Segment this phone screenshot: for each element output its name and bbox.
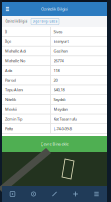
button[interactable]: Çevre Bina ekle	[2, 136, 107, 152]
staticText: Tapu Alanı	[5, 87, 23, 92]
staticText: Saydalı	[53, 97, 65, 102]
staticText: Gazihan	[53, 48, 67, 54]
button[interactable]: Diğer Bilgi Listesi	[31, 18, 59, 25]
button[interactable]: Menu	[2, 2, 13, 16]
button[interactable]: Öznitelik Bilgisi	[4, 18, 29, 25]
staticText: Meydan	[53, 106, 67, 112]
staticText: 118	[53, 68, 59, 73]
button[interactable]: Tool 2	[23, 186, 44, 202]
button[interactable]: Tool 4	[65, 186, 86, 202]
button[interactable]: Tool 3	[44, 186, 65, 202]
staticText: Nitelik	[5, 97, 16, 102]
staticText: Öznitelik Bilgisi	[5, 20, 27, 23]
staticText: Mahalle No	[5, 58, 25, 63]
staticText: Sivas	[53, 29, 62, 34]
button[interactable]: Tool 1	[2, 186, 23, 202]
staticText: Çevre Bina ekle	[40, 141, 68, 147]
staticText: L-74-0-09-B	[53, 126, 72, 131]
staticText: Zemin Tip	[5, 116, 22, 121]
staticText: 26774	[53, 58, 63, 63]
staticText: Öznitelik Bilgisi	[41, 6, 68, 12]
staticText: Esenyurt	[53, 39, 68, 44]
staticText: Parsel	[5, 77, 16, 83]
staticText: 20	[53, 77, 57, 83]
staticText: İl	[5, 29, 7, 34]
button[interactable]: Tool 5	[86, 186, 107, 202]
staticText: Pafta	[5, 126, 13, 131]
staticText: 640,18	[53, 87, 64, 92]
staticText: İlçe	[5, 39, 11, 44]
staticText: Ada	[5, 68, 12, 73]
staticText: Mahalle Adı	[5, 48, 26, 54]
staticText: Diğer Bilgi Listesi	[32, 20, 57, 23]
staticText: Kat Tasarrufu	[53, 116, 76, 121]
staticText: Mevkii	[5, 106, 17, 112]
